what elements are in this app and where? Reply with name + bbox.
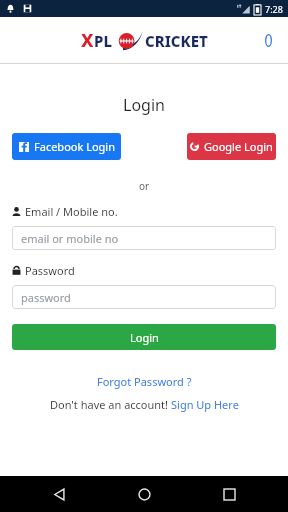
button[interactable]: Forgot Password ?: [91, 372, 198, 391]
staticText: Don't have an account!: [50, 397, 171, 412]
staticText: Google Login: [204, 139, 273, 154]
staticText: Email / Mobile no.: [25, 204, 118, 219]
staticText: 7:28: [265, 3, 283, 15]
staticText: Login: [12, 94, 276, 116]
button[interactable]: password: [12, 285, 276, 309]
staticText: email or mobile no: [21, 231, 119, 246]
button[interactable]: email or mobile no: [12, 226, 276, 250]
staticText: CRICKET: [145, 31, 208, 51]
button[interactable]: Menu: [256, 28, 280, 52]
staticText: PL: [94, 31, 112, 51]
staticText: Sign Up Here: [171, 397, 239, 412]
button[interactable]: Facebook Login: [12, 133, 121, 160]
staticText: or: [12, 179, 276, 193]
button[interactable]: Google Login: [187, 133, 276, 160]
button[interactable]: Recent apps: [214, 479, 244, 509]
staticText: Password: [25, 263, 75, 278]
staticText: Login: [130, 330, 159, 345]
staticText: Facebook Login: [34, 139, 115, 154]
staticText: Forgot Password ?: [97, 374, 192, 389]
button[interactable]: Home: [129, 479, 159, 509]
staticText: X: [81, 28, 94, 53]
button[interactable]: Sign Up Here: [171, 397, 239, 412]
button[interactable]: Login: [12, 324, 276, 350]
button[interactable]: Back: [44, 479, 74, 509]
staticText: password: [21, 290, 71, 305]
